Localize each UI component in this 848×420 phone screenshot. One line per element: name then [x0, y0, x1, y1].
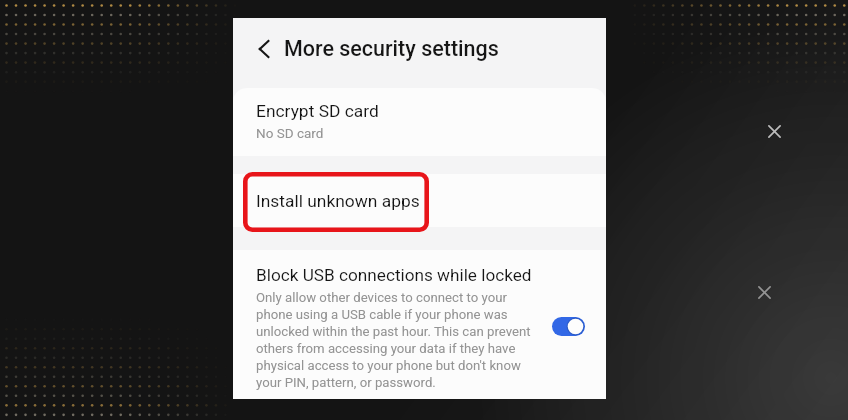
staticText: Only allow other devices to connect to y… [256, 290, 538, 391]
staticText: More security settings [284, 36, 499, 61]
staticText: Encrypt SD card [256, 101, 379, 121]
staticText: Block USB connections while locked [256, 265, 532, 285]
button[interactable]: Block USB connections toggle [552, 317, 585, 336]
button[interactable]: Close [766, 123, 783, 140]
button[interactable]: Back [253, 38, 275, 60]
staticText: No SD card [256, 125, 324, 141]
button[interactable]: Install unknown apps [233, 174, 606, 227]
staticText: Install unknown apps [256, 191, 420, 211]
button[interactable]: Back [233, 18, 606, 88]
button[interactable]: Encrypt SD card [233, 88, 606, 156]
button[interactable]: Close [756, 284, 773, 301]
